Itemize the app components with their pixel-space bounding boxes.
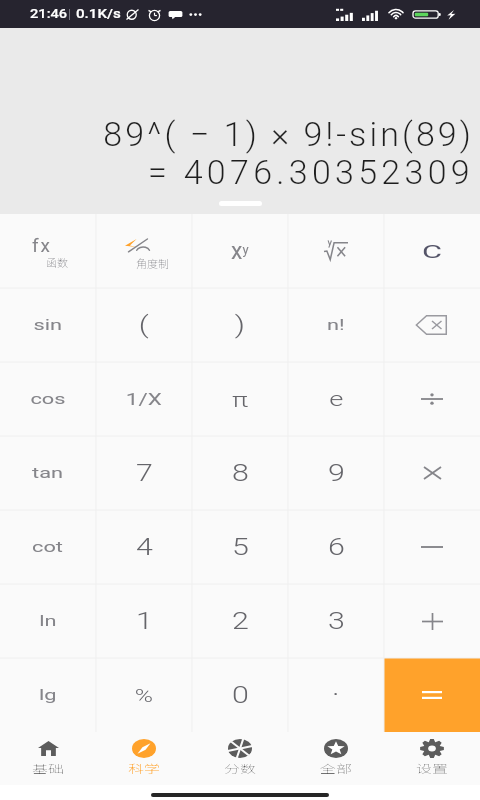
- staticText: 9: [328, 460, 345, 487]
- button[interactable]: Plus: [384, 584, 480, 658]
- button[interactable]: %: [96, 658, 192, 732]
- staticText: 0.1K/s: [76, 7, 121, 21]
- staticText: = 4076.30352309: [147, 152, 474, 192]
- staticText: C: [422, 240, 443, 262]
- button[interactable]: n!: [288, 288, 384, 362]
- staticText: n!: [327, 316, 346, 334]
- staticText: 4: [136, 534, 153, 561]
- staticText: tan: [32, 464, 64, 482]
- button[interactable]: C: [384, 214, 480, 288]
- button[interactable]: fx: [0, 214, 96, 288]
- button[interactable]: sin: [0, 288, 96, 362]
- staticText: 0: [232, 682, 249, 709]
- button[interactable]: ln: [0, 584, 96, 658]
- staticText: 7: [136, 460, 153, 487]
- button[interactable]: 7: [96, 436, 192, 510]
- button[interactable]: 科学: [96, 732, 192, 785]
- staticText: e: [329, 387, 344, 412]
- staticText: 1/X: [126, 390, 162, 409]
- button[interactable]: lg: [0, 658, 96, 732]
- staticText: 6: [328, 534, 345, 561]
- button[interactable]: 2: [192, 584, 288, 658]
- button[interactable]: 4: [96, 510, 192, 584]
- staticText: cot: [32, 538, 64, 556]
- button[interactable]: 1/X: [96, 362, 192, 436]
- staticText: ): [235, 311, 245, 339]
- staticText: 全部: [320, 760, 352, 776]
- staticText: %: [135, 684, 154, 706]
- button[interactable]: Divide: [384, 362, 480, 436]
- staticText: fx: [32, 234, 53, 256]
- button[interactable]: 全部: [288, 732, 384, 785]
- button[interactable]: cot: [0, 510, 96, 584]
- button[interactable]: Backspace: [384, 288, 480, 362]
- button[interactable]: 设置: [384, 732, 480, 785]
- staticText: 函数: [46, 254, 68, 270]
- button[interactable]: tan: [0, 436, 96, 510]
- staticText: ·: [332, 682, 340, 709]
- staticText: 设置: [416, 760, 448, 776]
- button[interactable]: 基础: [0, 732, 96, 785]
- button[interactable]: 分数: [192, 732, 288, 785]
- button[interactable]: cos: [0, 362, 96, 436]
- button[interactable]: ·: [288, 658, 384, 732]
- button[interactable]: 5: [192, 510, 288, 584]
- staticText: 角度制: [136, 255, 169, 271]
- staticText: sin: [33, 316, 62, 334]
- button[interactable]: (: [96, 288, 192, 362]
- button[interactable]: 8: [192, 436, 288, 510]
- staticText: 1: [136, 608, 153, 635]
- button[interactable]: e: [288, 362, 384, 436]
- button[interactable]: Minus: [384, 510, 480, 584]
- button[interactable]: ): [192, 288, 288, 362]
- button[interactable]: 0: [192, 658, 288, 732]
- button[interactable]: Multiply: [384, 436, 480, 510]
- staticText: 3: [328, 608, 345, 635]
- staticText: 科学: [128, 760, 160, 776]
- staticText: 基础: [32, 760, 64, 776]
- staticText: 89^( − 1) × 9!-sin(89): [103, 114, 474, 154]
- staticText: cos: [30, 390, 67, 408]
- staticText: (: [139, 311, 149, 339]
- staticText: 5: [232, 534, 249, 561]
- button[interactable]: 1: [96, 584, 192, 658]
- staticText: xy: [231, 238, 249, 265]
- button[interactable]: 角度制: [96, 214, 192, 288]
- button[interactable]: x to the power y: [192, 214, 288, 288]
- button[interactable]: 6: [288, 510, 384, 584]
- button[interactable]: nth root: [288, 214, 384, 288]
- button[interactable]: 9: [288, 436, 384, 510]
- button[interactable]: π: [192, 362, 288, 436]
- staticText: 8: [232, 460, 249, 487]
- staticText: 2: [232, 608, 249, 635]
- staticText: ln: [39, 612, 57, 630]
- staticText: lg: [39, 686, 58, 704]
- button[interactable]: Equals: [384, 658, 480, 732]
- staticText: 分数: [224, 760, 256, 776]
- button[interactable]: 3: [288, 584, 384, 658]
- staticText: |: [68, 7, 71, 21]
- staticText: 21:46: [30, 7, 68, 21]
- staticText: π: [232, 388, 248, 411]
